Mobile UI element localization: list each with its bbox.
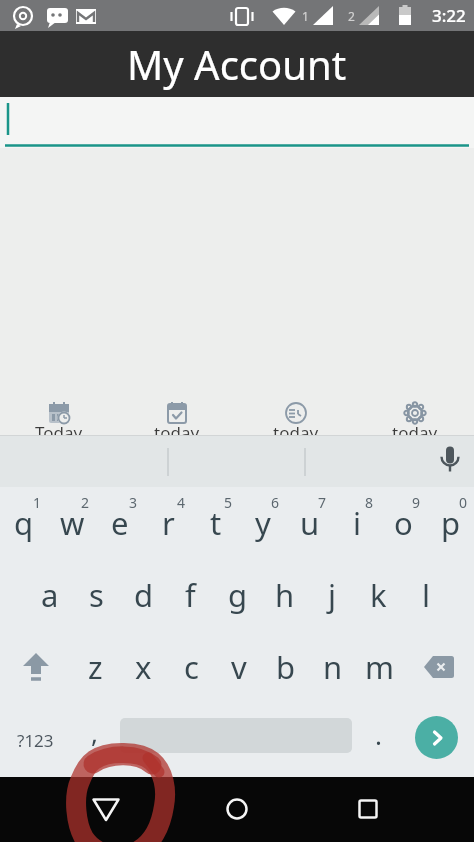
staticText: e [111,502,129,544]
button[interactable]: s [73,559,120,631]
button[interactable]: today [118,397,236,435]
button[interactable]: b [262,631,309,703]
staticText: q [14,502,34,544]
staticText: x [135,646,152,688]
button[interactable]: today [236,397,355,435]
button[interactable]: u [286,487,333,559]
button[interactable] [118,718,355,753]
button[interactable]: , [71,703,118,777]
button[interactable]: n [309,631,356,703]
button[interactable]: y [239,487,286,559]
staticText: Today [35,421,83,435]
staticText: m [365,646,394,688]
staticText: today [392,421,438,435]
staticText: d [134,574,154,616]
staticText: t [210,502,222,544]
button[interactable] [415,716,458,759]
button[interactable]: p [427,487,474,559]
staticText: 3:22 [432,4,466,27]
button[interactable]: m [356,631,403,703]
button[interactable] [0,435,474,487]
staticText: c [184,646,199,688]
button[interactable]: g [214,559,261,631]
button[interactable]: . [355,703,402,777]
staticText: ?123 [17,729,54,752]
staticText: 2 [81,493,90,512]
button[interactable]: v [215,631,262,703]
staticText: 5 [224,493,233,512]
staticText: 1 [33,493,42,512]
button[interactable]: k [355,559,402,631]
button[interactable]: ?123 [0,703,71,777]
staticText: h [275,574,295,616]
staticText: y [255,502,271,544]
button[interactable]: h [261,559,308,631]
staticText: 3 [129,493,138,512]
button[interactable]: d [120,559,167,631]
staticText: l [422,574,430,616]
button[interactable]: i [333,487,380,559]
staticText: s [89,574,104,616]
staticText: 2 [348,8,355,24]
button[interactable] [211,783,263,835]
button[interactable]: r [144,487,192,559]
button[interactable]: t [192,487,239,559]
button[interactable]: x [119,631,167,703]
button[interactable]: q [0,487,48,559]
button[interactable]: c [167,631,215,703]
button[interactable]: today [355,397,474,435]
staticText: 6 [271,493,280,512]
button[interactable]: o [380,487,427,559]
button[interactable] [0,97,474,148]
staticText: today [273,421,319,435]
staticText: a [41,574,59,616]
staticText: , [91,715,98,750]
staticText: 1 [302,8,309,24]
staticText: 7 [318,493,327,512]
staticText: 0 [459,493,468,512]
button[interactable] [80,784,132,836]
staticText: 8 [365,493,374,512]
staticText: My Account [127,37,347,91]
button[interactable]: e [96,487,144,559]
staticText: k [370,574,387,616]
staticText: . [375,717,382,752]
staticText: f [185,574,196,616]
staticText: w [60,502,85,544]
staticText: u [300,502,320,544]
staticText: 9 [412,493,421,512]
staticText: o [394,502,413,544]
staticText: i [353,502,361,544]
button[interactable]: l [402,559,449,631]
staticText: b [276,646,296,688]
button[interactable]: a [26,559,73,631]
staticText: p [441,502,461,544]
button[interactable] [342,783,394,835]
button[interactable] [0,631,71,703]
button[interactable]: My Account [0,31,474,97]
button[interactable] [403,631,474,703]
staticText: 4 [177,493,186,512]
staticText: v [231,646,247,688]
button[interactable]: Today [0,397,118,435]
staticText: z [88,646,103,688]
staticText: j [328,574,336,616]
button[interactable]: j [308,559,355,631]
button[interactable]: z [71,631,119,703]
staticText: r [162,502,175,544]
staticText: n [323,646,343,688]
button[interactable]: w [48,487,96,559]
staticText: today [154,421,200,435]
button[interactable]: f [167,559,214,631]
staticText: g [228,574,248,616]
